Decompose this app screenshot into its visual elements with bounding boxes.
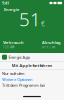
staticText: 51 [19,7,41,31]
staticText: Nur aufrufen [2,71,24,76]
staticText: Tritt dem Programm bei [2,83,45,88]
staticText: 49 € / Mt. [42,45,56,49]
staticText: Mit Apple fortfahren [11,63,52,68]
staticText: Abschlag [42,40,61,45]
staticText: Energie [4,7,19,12]
staticText: € [41,19,45,28]
staticText: 9:41 [2,0,9,6]
staticText: 120 kWh [3,45,15,49]
staticText: Energie App [8,54,29,60]
staticText: Verbrauch [3,40,24,45]
staticText: Weitere Optionen [2,77,32,82]
